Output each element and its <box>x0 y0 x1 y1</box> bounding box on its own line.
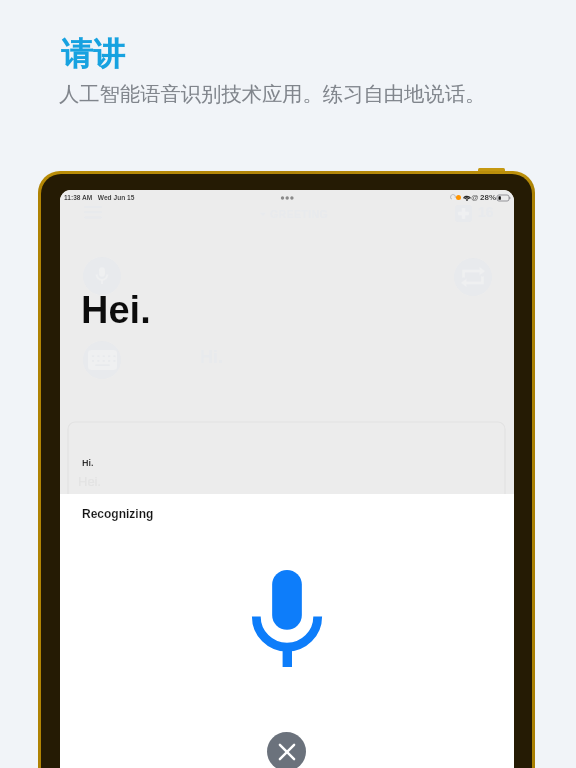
staticText: Hei. <box>78 474 102 489</box>
staticText: 28% <box>480 193 497 202</box>
staticText: @ <box>471 193 479 201</box>
staticText: Recognizing <box>82 507 154 520</box>
button[interactable]: Microphone <box>247 568 327 672</box>
staticText: 11:38 AM Wed Jun 15 <box>64 194 135 201</box>
staticText: 请讲 <box>61 34 125 74</box>
staticText: Hei. <box>81 289 151 331</box>
staticText: 人工智能语音识别技术应用。练习自由地说话。 <box>59 81 486 107</box>
staticText: Hi. <box>82 458 94 468</box>
button[interactable]: Close <box>267 732 306 768</box>
